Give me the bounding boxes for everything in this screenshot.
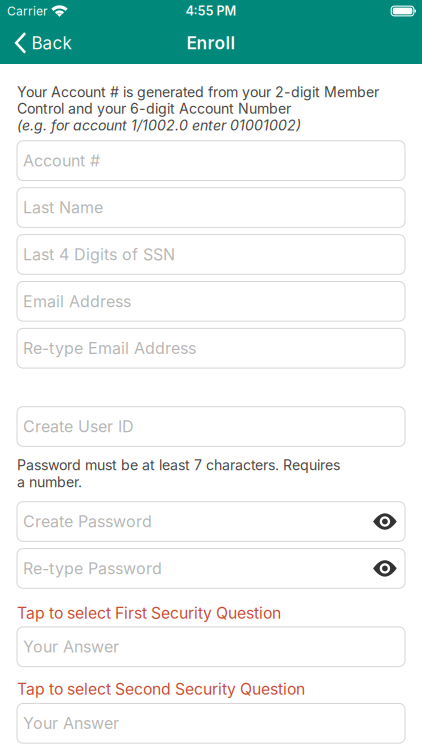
staticText: Back (31, 33, 71, 53)
staticText: Tap to select First Security Question (17, 603, 281, 622)
staticText: Re-type Password (23, 559, 162, 578)
staticText: (e.g. for account 1/1002.0 enter 0100100… (17, 117, 301, 134)
button[interactable]: Tap to select Second Security Question (17, 679, 405, 698)
staticText: Last Name (23, 198, 103, 217)
staticText: 4:55 PM (185, 3, 236, 19)
button[interactable]: Last Name (17, 188, 405, 227)
button[interactable]: Back (0, 22, 81, 64)
staticText: Create Password (23, 512, 152, 531)
staticText: Enroll (186, 32, 235, 53)
staticText: Email Address (23, 292, 131, 311)
button[interactable]: Your Answer (17, 627, 405, 667)
staticText: Your Answer (23, 637, 119, 656)
staticText: Carrier (7, 4, 48, 18)
button[interactable]: Last 4 Digits of SSN (17, 235, 405, 274)
button[interactable]: Your Answer (17, 703, 405, 743)
staticText: Your Answer (23, 714, 119, 733)
staticText: Create User ID (23, 417, 134, 436)
button[interactable]: Re-type Email Address (17, 328, 405, 368)
button[interactable]: Create User ID (17, 407, 405, 446)
staticText: Account # (23, 151, 100, 170)
staticText: Re-type Email Address (23, 338, 196, 358)
button[interactable]: Email Address (17, 281, 405, 321)
button[interactable]: Create Password (17, 502, 405, 541)
button[interactable]: Account # (17, 141, 405, 180)
button[interactable]: Tap to select First Security Question (17, 603, 405, 622)
staticText: Password must be at least 7 characters. … (17, 457, 340, 491)
staticText: Your Account # is generated from your 2-… (17, 84, 379, 117)
staticText: Last 4 Digits of SSN (23, 245, 175, 264)
staticText: Tap to select Second Security Question (17, 679, 305, 698)
button[interactable]: Re-type Password (17, 549, 405, 588)
